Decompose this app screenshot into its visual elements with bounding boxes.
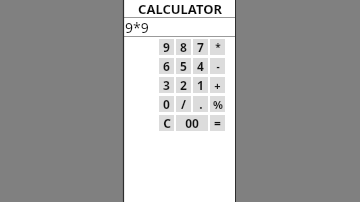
button[interactable]: 00 xyxy=(176,115,208,131)
button[interactable]: - xyxy=(210,58,225,74)
staticText: 9*9 xyxy=(125,18,149,37)
staticText: - xyxy=(216,59,220,73)
staticText: 3 xyxy=(163,77,170,93)
staticText: % xyxy=(213,97,223,112)
staticText: / xyxy=(181,96,186,112)
staticText: 2 xyxy=(180,77,187,93)
button[interactable]: 6 xyxy=(159,58,174,74)
staticText: CALCULATOR xyxy=(138,0,222,17)
button[interactable]: 0 xyxy=(159,96,174,112)
button[interactable]: 8 xyxy=(176,39,191,55)
button[interactable]: C xyxy=(159,115,174,131)
staticText: 8 xyxy=(180,39,187,55)
staticText: 7 xyxy=(197,39,204,55)
button[interactable]: / xyxy=(176,96,191,112)
staticText: . xyxy=(199,96,203,112)
button[interactable]: . xyxy=(193,96,208,112)
button[interactable]: 4 xyxy=(193,58,208,74)
staticText: C xyxy=(163,115,171,131)
staticText: 1 xyxy=(197,77,204,93)
staticText: * xyxy=(215,40,221,54)
button[interactable]: * xyxy=(210,39,225,55)
button[interactable]: % xyxy=(210,96,225,112)
button[interactable]: 1 xyxy=(193,77,208,93)
staticText: 0 xyxy=(163,96,170,112)
staticText: + xyxy=(214,78,221,93)
button[interactable]: 5 xyxy=(176,58,191,74)
staticText: 9 xyxy=(163,39,170,55)
staticText: 6 xyxy=(163,58,170,74)
staticText: 5 xyxy=(180,58,187,74)
button[interactable]: 3 xyxy=(159,77,174,93)
button[interactable]: 9 xyxy=(159,39,174,55)
button[interactable]: 9*9 xyxy=(124,18,236,37)
staticText: 4 xyxy=(197,58,204,74)
staticText: 00 xyxy=(185,115,199,131)
staticText: = xyxy=(214,115,221,131)
button[interactable]: + xyxy=(210,77,225,93)
button[interactable]: 2 xyxy=(176,77,191,93)
button[interactable]: = xyxy=(210,115,225,131)
button[interactable]: 7 xyxy=(193,39,208,55)
